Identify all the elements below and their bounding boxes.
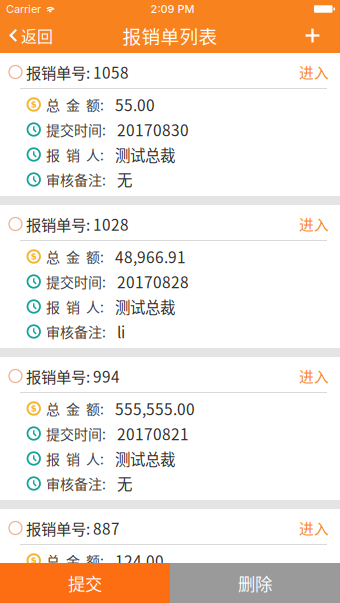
staticText: 测试总裁 [115, 295, 175, 318]
staticText: 报销单号: 1028 [26, 213, 129, 235]
staticText: li [117, 320, 125, 343]
staticText: 总 金 额: [46, 94, 104, 115]
staticText: 提交时间: [46, 271, 106, 292]
staticText: Carrier [6, 2, 41, 16]
staticText: 20170821 [117, 422, 189, 445]
staticText: 无 [117, 168, 132, 191]
staticText: 报销单号: 887 [26, 517, 120, 539]
button[interactable]: 报销单号: 994 [0, 357, 340, 392]
staticText: $ [31, 99, 37, 110]
staticText: 总 金 额: [46, 550, 104, 571]
staticText: 返回 [21, 24, 53, 47]
staticText: 无 [117, 472, 132, 495]
button[interactable]: 报销单号: 1058 [0, 53, 340, 88]
staticText: 总 金 额: [46, 246, 104, 267]
staticText: 20170830 [117, 118, 189, 141]
staticText: 报 销 人: [46, 296, 104, 317]
staticText: 进入 [299, 517, 329, 539]
button[interactable]: 返回 [0, 18, 61, 53]
staticText: 20170815 [117, 574, 189, 597]
staticText: 555,555.00 [115, 397, 195, 420]
staticText: 124.00 [115, 549, 164, 572]
staticText: 提交时间: [46, 119, 106, 140]
staticText: 48,966.91 [115, 245, 186, 268]
staticText: $ [31, 555, 37, 566]
button[interactable]: 提交 [0, 563, 170, 603]
button[interactable]: 报销单号: 887 [0, 509, 340, 544]
staticText: 提交时间: [46, 423, 106, 444]
staticText: $ [31, 403, 37, 414]
staticText: 报 销 人: [46, 448, 104, 469]
staticText: 审核备注: [46, 321, 106, 342]
staticText: 报销单列表 [122, 22, 217, 49]
staticText: 进入 [299, 365, 329, 387]
staticText: 测试总裁 [115, 599, 175, 603]
staticText: 审核备注: [46, 473, 106, 494]
staticText: $ [31, 251, 37, 262]
staticText: 报销单号: 1058 [26, 61, 129, 83]
staticText: 报 销 人: [46, 144, 104, 165]
staticText: 测试总裁 [115, 447, 175, 470]
staticText: 2:09 PM [150, 2, 194, 16]
staticText: 删除 [238, 570, 272, 596]
staticText: 提交时间: [46, 575, 106, 596]
staticText: 审核备注: [46, 169, 106, 190]
staticText: 进入 [299, 61, 329, 83]
staticText: 提交 [68, 570, 102, 596]
staticText: 报销单号: 994 [26, 365, 120, 387]
staticText: 总 金 额: [46, 398, 104, 419]
button[interactable]: Add [293, 18, 340, 53]
staticText: 测试总裁 [115, 143, 175, 166]
button[interactable]: 报销单号: 1028 [0, 205, 340, 240]
button[interactable]: 删除 [170, 563, 340, 603]
staticText: 进入 [299, 213, 329, 235]
staticText: 20170828 [117, 270, 189, 293]
staticText: 55.00 [115, 93, 155, 116]
